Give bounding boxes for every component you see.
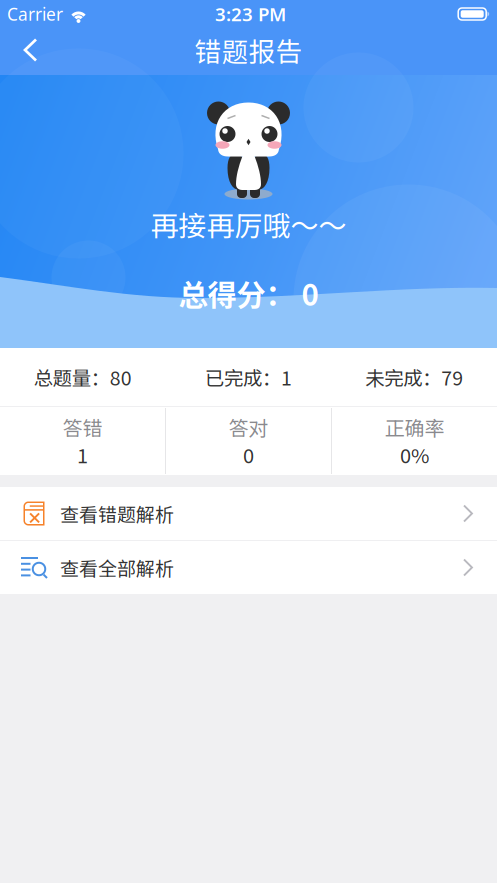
staticText: 查看错题解析 [60, 500, 174, 527]
staticText: 未完成：79 [365, 363, 463, 391]
staticText: 答对 [228, 412, 268, 441]
staticText: 错题报告 [194, 31, 302, 69]
button[interactable]: Back [0, 26, 61, 73]
staticText: 总题量：80 [34, 363, 132, 391]
staticText: 已完成：1 [205, 363, 292, 391]
staticText: 0% [400, 440, 429, 469]
staticText: 0 [243, 440, 254, 469]
staticText: 查看全部解析 [60, 554, 174, 581]
staticText: 答错 [62, 412, 102, 441]
staticText: 1 [77, 440, 88, 469]
staticText: Carrier [7, 2, 63, 25]
staticText: 总得分： 0 [178, 272, 318, 314]
staticText: 再接再厉哦～～ [150, 204, 346, 244]
staticText: 3:23 PM [215, 2, 286, 26]
staticText: 正确率 [384, 412, 444, 441]
button[interactable]: 查看错题解析 [0, 487, 497, 540]
button[interactable]: 查看全部解析 [0, 541, 497, 594]
